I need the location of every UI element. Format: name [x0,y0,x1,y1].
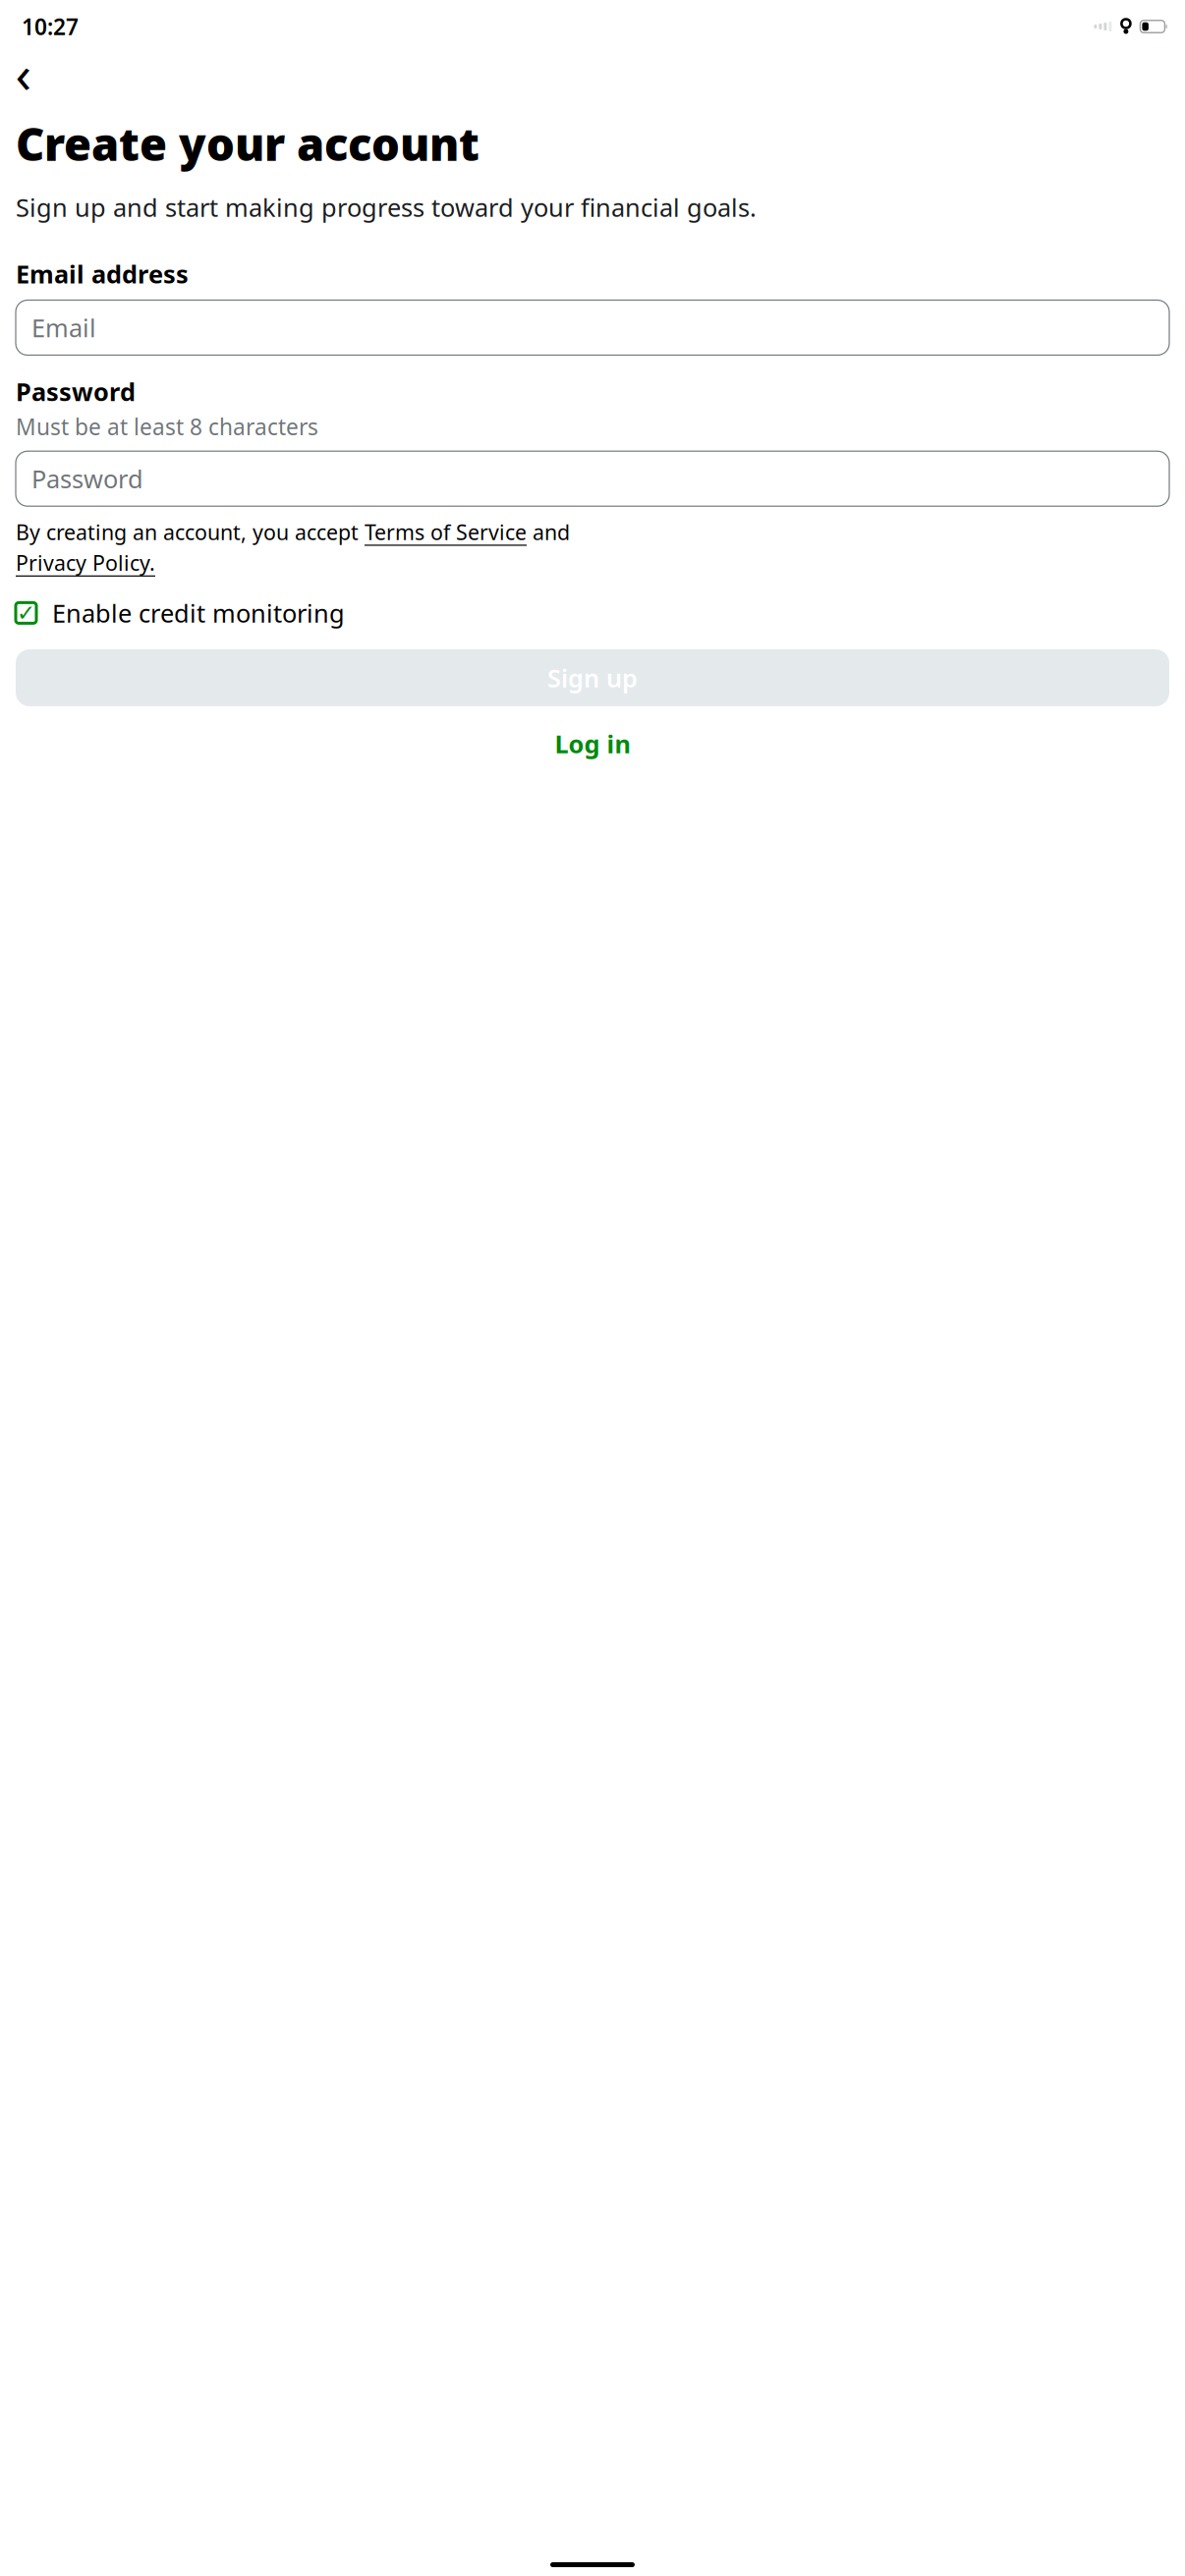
staticText: Password [16,375,136,408]
staticText: Terms of Service [365,518,527,546]
staticText: and [527,518,570,546]
staticText: 10:27 [22,12,79,41]
staticText: Log in [555,727,630,760]
staticText: Create your account [16,114,480,173]
staticText: Privacy Policy. [16,549,155,577]
staticText: Email [31,311,96,344]
staticText: Sign up and start making progress toward… [16,191,757,224]
staticText: ✓ [17,600,35,626]
button[interactable]: Log in [16,722,1169,765]
staticText: Must be at least 8 characters [16,412,318,441]
button[interactable]: Privacy Policy. [16,549,155,577]
staticText: Email address [16,257,189,290]
button[interactable]: Terms of Service [365,518,527,546]
staticText: ‹ [15,38,32,107]
staticText: Sign up [547,661,638,694]
button[interactable]: Password [16,451,1169,506]
button[interactable]: Back [2,53,45,92]
button[interactable]: ✓ [16,598,1169,628]
staticText: By creating an account, you accept [16,518,365,546]
staticText: Enable credit monitoring [52,596,345,629]
button[interactable]: Sign up [16,649,1169,706]
staticText: Password [31,462,143,495]
button[interactable]: Email [16,300,1169,355]
